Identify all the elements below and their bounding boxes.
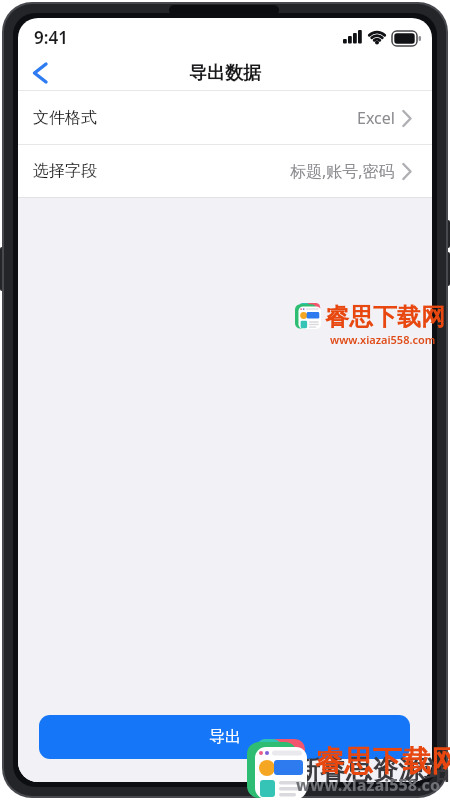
button[interactable]: 导出: [39, 715, 410, 759]
staticText: www.xiazai558.com: [296, 774, 450, 800]
staticText: 标题,账号,密码: [290, 160, 395, 182]
staticText: www.xiazai558.com: [330, 332, 436, 347]
staticText: 新睿思资源站: [294, 754, 450, 787]
staticText: 导出: [209, 727, 241, 747]
staticText: 导出数据: [189, 62, 261, 85]
staticText: 9:41: [34, 26, 68, 49]
staticText: 文件格式: [33, 108, 97, 128]
staticText: 睿思下载网: [315, 743, 450, 779]
button[interactable]: 选择字段: [18, 145, 432, 197]
staticText: 睿思下载网: [325, 302, 445, 332]
button[interactable]: [26, 58, 58, 90]
button[interactable]: 文件格式: [18, 91, 432, 144]
staticText: Excel: [357, 107, 395, 129]
staticText: 选择字段: [33, 161, 97, 181]
